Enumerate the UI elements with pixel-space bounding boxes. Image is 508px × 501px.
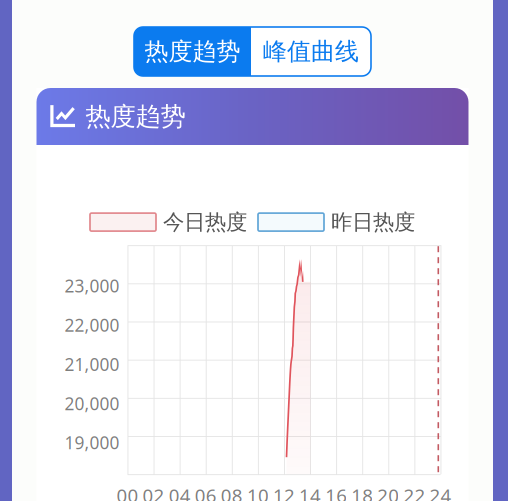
staticText: 02 [143,483,165,501]
staticText: 热度趋势 [144,37,240,66]
staticText: 00 [116,483,138,501]
staticText: 04 [169,483,191,501]
staticText: 12 [273,483,295,501]
button[interactable]: 热度趋势 [134,27,251,76]
staticText: 20 [377,483,399,501]
staticText: 08 [221,483,243,501]
staticText: 22 [403,483,425,501]
button[interactable]: 峰值曲线 [251,27,371,76]
staticText: 06 [195,483,217,501]
staticText: 14 [299,483,321,501]
staticText: 热度趋势 [85,101,185,132]
staticText: 峰值曲线 [263,37,359,66]
staticText: 23,000 [64,274,119,297]
staticText: 19,000 [64,431,119,454]
staticText: 22,000 [64,314,119,337]
staticText: 16 [325,483,347,501]
staticText: 21,000 [64,353,119,376]
staticText: 今日热度 [163,209,247,235]
staticText: 10 [247,483,269,501]
staticText: 24 [429,483,451,501]
staticText: 昨日热度 [331,209,415,235]
staticText: 18 [351,483,373,501]
staticText: 20,000 [64,392,119,415]
